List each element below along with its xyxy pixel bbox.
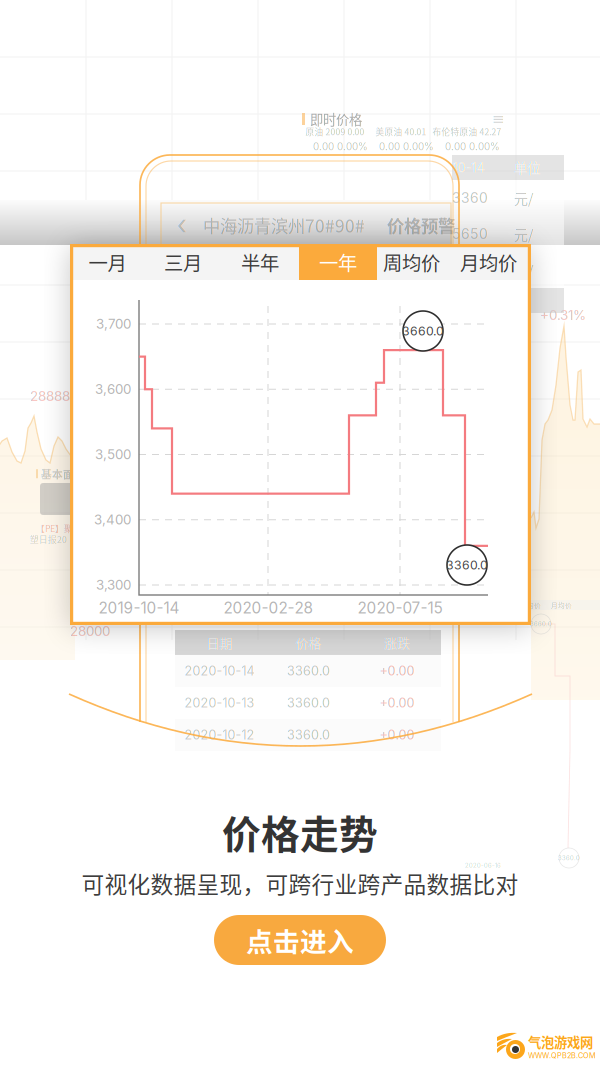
staticText: 中海沥青滨州70#90# (203, 212, 365, 238)
staticText: 2020-10-13 (184, 695, 254, 711)
staticText: 周均价 (520, 600, 541, 610)
staticText: 3730 (452, 261, 487, 278)
staticText: 气泡游戏网 (528, 1032, 593, 1051)
staticText: 2020-02-28 (223, 599, 312, 617)
staticText: 3360.0 (446, 558, 488, 572)
staticText: 2020-10-12 (184, 727, 254, 743)
staticText: 2020-06-16 (465, 862, 501, 869)
staticText: ‹ (177, 209, 187, 241)
button[interactable]: 周均价 (377, 244, 446, 280)
staticText: 原油 2009 0.00 (305, 125, 364, 138)
staticText: 0.00 0.00% (445, 140, 500, 153)
staticText: 3,600 (95, 381, 131, 397)
staticText: 2020-10-14 (184, 663, 254, 679)
staticText: 一月 (88, 248, 126, 276)
staticText: 2019-10-14 (98, 599, 179, 617)
staticText: 0.00 0.00% (313, 140, 368, 153)
staticText: 半年 (241, 248, 279, 276)
button[interactable]: 一月 (70, 244, 145, 280)
staticText: 3360.0 (287, 695, 330, 711)
staticText: 【PE】聚 (36, 522, 73, 534)
staticText: 元/ (514, 224, 533, 244)
button[interactable]: 点击进入 (214, 915, 386, 965)
staticText: 3360.0 (287, 727, 330, 743)
staticText: 周均价 (383, 248, 440, 276)
staticText: 价格预警 (387, 212, 455, 238)
staticText: +0.00 (379, 727, 414, 743)
staticText: 价格 (295, 633, 321, 652)
staticText: 元/ (514, 260, 533, 280)
staticText: +0.00 (379, 695, 414, 711)
staticText: 3,700 (96, 316, 131, 332)
staticText: +0.00 (379, 663, 414, 679)
staticText: 一年 (319, 248, 357, 276)
staticText: 3360.0 (287, 663, 330, 679)
staticText: 基本面 (41, 466, 74, 481)
staticText: 价格走势 (222, 804, 378, 860)
staticText: 3360 (452, 189, 488, 206)
staticText: 28888 (30, 388, 70, 404)
staticText: 点击进入 (246, 921, 354, 959)
staticText: 单位 (514, 158, 540, 177)
staticText: 5650 (452, 225, 488, 242)
staticText: 3,500 (95, 446, 131, 462)
staticText: 3660.0 (402, 324, 444, 338)
staticText: 日期 (206, 633, 232, 652)
staticText: 3660.0 (530, 620, 552, 628)
staticText: 3,400 (94, 512, 131, 528)
button[interactable]: 三月 (145, 244, 221, 280)
staticText: 即时价格 (310, 109, 362, 129)
staticText: +0.31% (540, 307, 586, 323)
button[interactable]: 一年 (299, 244, 377, 280)
staticText: ≡ (492, 110, 504, 128)
staticText: 月均价 (460, 248, 517, 276)
staticText: 涨跌 (384, 633, 410, 652)
staticText: 元/ (514, 188, 533, 208)
staticText: 可视化数据呈现，可跨行业跨产品数据比对 (81, 867, 518, 899)
staticText: 0.00 0.00% (379, 140, 434, 153)
staticText: 3360.0 (558, 854, 580, 862)
button[interactable]: 半年 (221, 244, 299, 280)
staticText: 10-14 (452, 159, 485, 175)
staticText: 塑日报20 (30, 533, 67, 545)
staticText: 布伦特原油 42.27 (432, 125, 501, 138)
staticText: 美原油 40.01 (375, 125, 426, 138)
staticText: 2020-07-15 (357, 599, 442, 617)
staticText: 月均价 (551, 600, 572, 610)
staticText: 3,300 (96, 577, 131, 593)
staticText: 三月 (164, 248, 202, 276)
staticText: WWW.QPB2B.COM (528, 1051, 596, 1060)
staticText: 28000 (70, 623, 110, 639)
button[interactable]: 月均价 (446, 244, 531, 280)
